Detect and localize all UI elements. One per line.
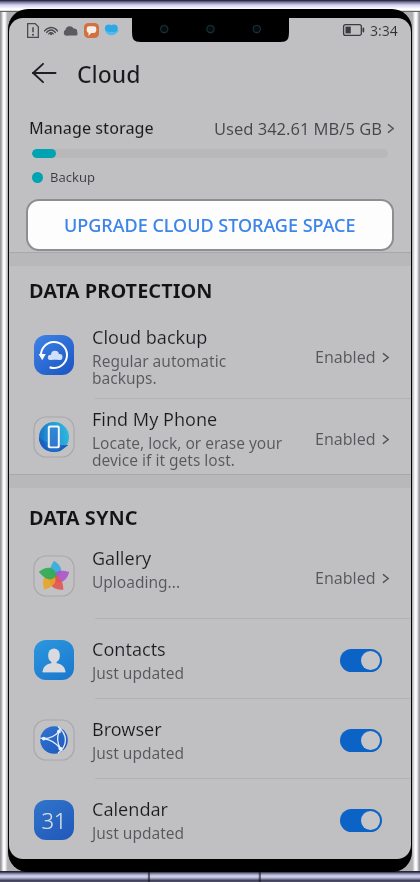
staticText: Contacts — [92, 637, 166, 662]
staticText: Enabled — [315, 346, 376, 368]
staticText: Just updated — [92, 822, 185, 843]
staticText: Locate, lock, or erase your device if it… — [92, 432, 283, 471]
staticText: Just updated — [92, 662, 185, 683]
staticText: Calendar — [92, 797, 168, 822]
button[interactable]: Toggle Browser — [340, 729, 382, 752]
button[interactable]: Find My Phone — [9, 399, 411, 463]
staticText: Cloud — [77, 58, 141, 89]
staticText: Enabled — [315, 428, 376, 450]
staticText: Just updated — [92, 742, 185, 763]
staticText: DATA SYNC — [29, 504, 138, 531]
staticText: Backup — [50, 168, 95, 186]
staticText: Uploading... — [92, 571, 181, 592]
button[interactable]: Contacts — [9, 634, 411, 686]
button[interactable]: 31 — [9, 794, 411, 846]
button[interactable]: UPGRADE CLOUD STORAGE SPACE — [26, 199, 394, 251]
staticText: Cloud backup — [92, 325, 208, 350]
staticText: Regular automatic backups. — [92, 350, 227, 389]
staticText: DATA PROTECTION — [29, 277, 213, 304]
button[interactable]: Cloud backup — [9, 317, 411, 381]
staticText: UPGRADE CLOUD STORAGE SPACE — [64, 213, 356, 238]
staticText: Gallery — [92, 546, 152, 571]
staticText: Find My Phone — [92, 407, 218, 432]
button[interactable]: Browser — [9, 714, 411, 766]
staticText: 31 — [41, 805, 67, 835]
staticText: 3:34 — [370, 21, 398, 40]
staticText: Browser — [92, 717, 162, 742]
button[interactable]: Toggle Calendar — [340, 809, 382, 832]
button[interactable]: Gallery — [9, 538, 411, 602]
button[interactable]: Manage storage — [9, 113, 411, 143]
staticText: Used 342.61 MB/5 GB — [214, 117, 382, 139]
staticText: Enabled — [315, 567, 376, 589]
button[interactable]: Back — [22, 51, 66, 95]
staticText: Manage storage — [29, 117, 154, 139]
button[interactable]: Toggle Contacts — [340, 649, 382, 672]
